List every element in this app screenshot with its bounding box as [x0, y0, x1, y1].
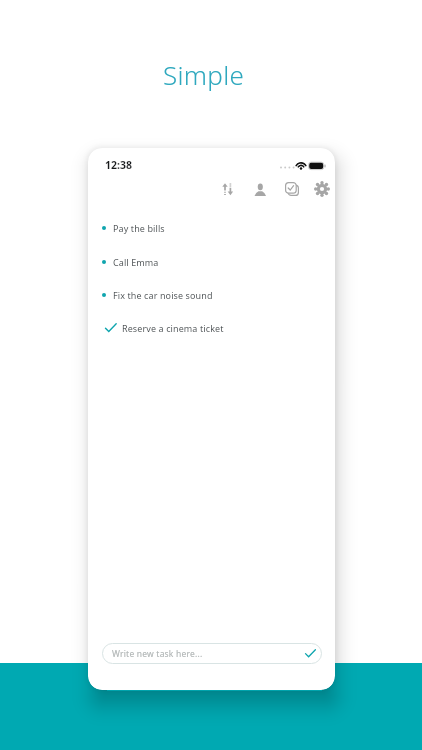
staticText: Call Emma — [113, 256, 159, 268]
staticText: 12:38 — [105, 158, 132, 172]
button[interactable] — [313, 180, 331, 198]
button[interactable] — [283, 180, 301, 198]
button[interactable]: Write new task here... — [102, 643, 322, 664]
staticText: Simple — [163, 57, 245, 92]
staticText: Fix the car noise sound — [113, 289, 213, 301]
button[interactable] — [251, 180, 269, 198]
staticText: Pay the bills — [113, 222, 165, 234]
button[interactable]: Call Emma — [102, 252, 159, 272]
button[interactable]: Pay the bills — [102, 218, 165, 238]
staticText: Write new task here... — [112, 648, 305, 660]
button[interactable]: Reserve a cinema ticket — [105, 318, 224, 338]
button[interactable]: Fix the car noise sound — [102, 285, 213, 305]
staticText: Reserve a cinema ticket — [122, 322, 224, 334]
button[interactable] — [218, 180, 236, 198]
